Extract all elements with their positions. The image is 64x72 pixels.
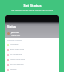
staticText: Status (7, 25, 16, 29)
staticText: Away from desk (10, 58, 25, 61)
staticText: Offline (10, 68, 17, 71)
button[interactable]: Offline (5, 67, 59, 72)
staticText: Busy right now (10, 48, 25, 51)
staticText: Available (10, 43, 19, 46)
staticText: Set Status (23, 3, 42, 8)
button[interactable]: Available (5, 42, 59, 47)
staticText: Do not disturb (10, 63, 24, 66)
button[interactable]: In a meeting (5, 52, 59, 57)
staticText: Jane Doe (11, 31, 19, 34)
staticText: In a meeting (10, 53, 22, 56)
button[interactable]: Do not disturb (5, 62, 59, 67)
staticText: Let others know what you're up to now (11, 9, 53, 12)
button[interactable]: Away from desk (5, 57, 59, 62)
staticText: Online now (11, 34, 21, 36)
staticText: Choose a status (7, 39, 22, 42)
button[interactable]: Busy right now (5, 47, 59, 52)
